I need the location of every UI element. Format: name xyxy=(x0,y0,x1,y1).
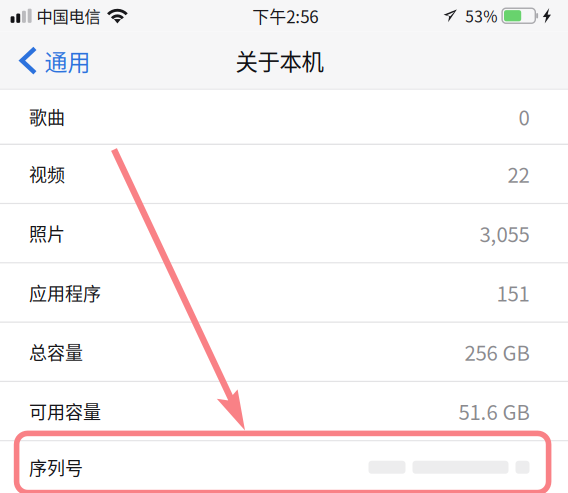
staticText: 256 GB xyxy=(464,337,529,367)
button[interactable]: 照片 xyxy=(0,204,568,264)
staticText: 通用 xyxy=(45,44,91,77)
staticText: 51.6 GB xyxy=(458,396,529,426)
staticText: 可用容量 xyxy=(29,398,101,424)
button[interactable]: 可用容量 xyxy=(0,382,568,441)
staticText: 歌曲 xyxy=(29,104,65,130)
staticText: 0 xyxy=(518,102,529,131)
staticText: 3,055 xyxy=(479,218,529,248)
staticText: 关于本机 xyxy=(235,44,323,77)
staticText: 视频 xyxy=(29,161,65,187)
staticText: 应用程序 xyxy=(29,279,101,306)
staticText: 53% xyxy=(465,5,497,27)
button[interactable]: 应用程序 xyxy=(0,264,568,323)
button[interactable]: 视频 xyxy=(0,145,568,204)
staticText: 总容量 xyxy=(29,339,83,365)
staticText: 序列号 xyxy=(29,454,83,480)
button[interactable]: 歌曲 xyxy=(0,90,568,145)
button[interactable]: 总容量 xyxy=(0,323,568,382)
button[interactable]: 序列号 xyxy=(0,441,568,493)
staticText: 22 xyxy=(507,159,529,189)
staticText: 照片 xyxy=(29,220,65,246)
staticText: 151 xyxy=(496,278,529,307)
staticText: 下午2:56 xyxy=(252,3,318,28)
button[interactable]: 返回通用 xyxy=(0,31,103,90)
staticText: 中国电信 xyxy=(36,4,100,28)
